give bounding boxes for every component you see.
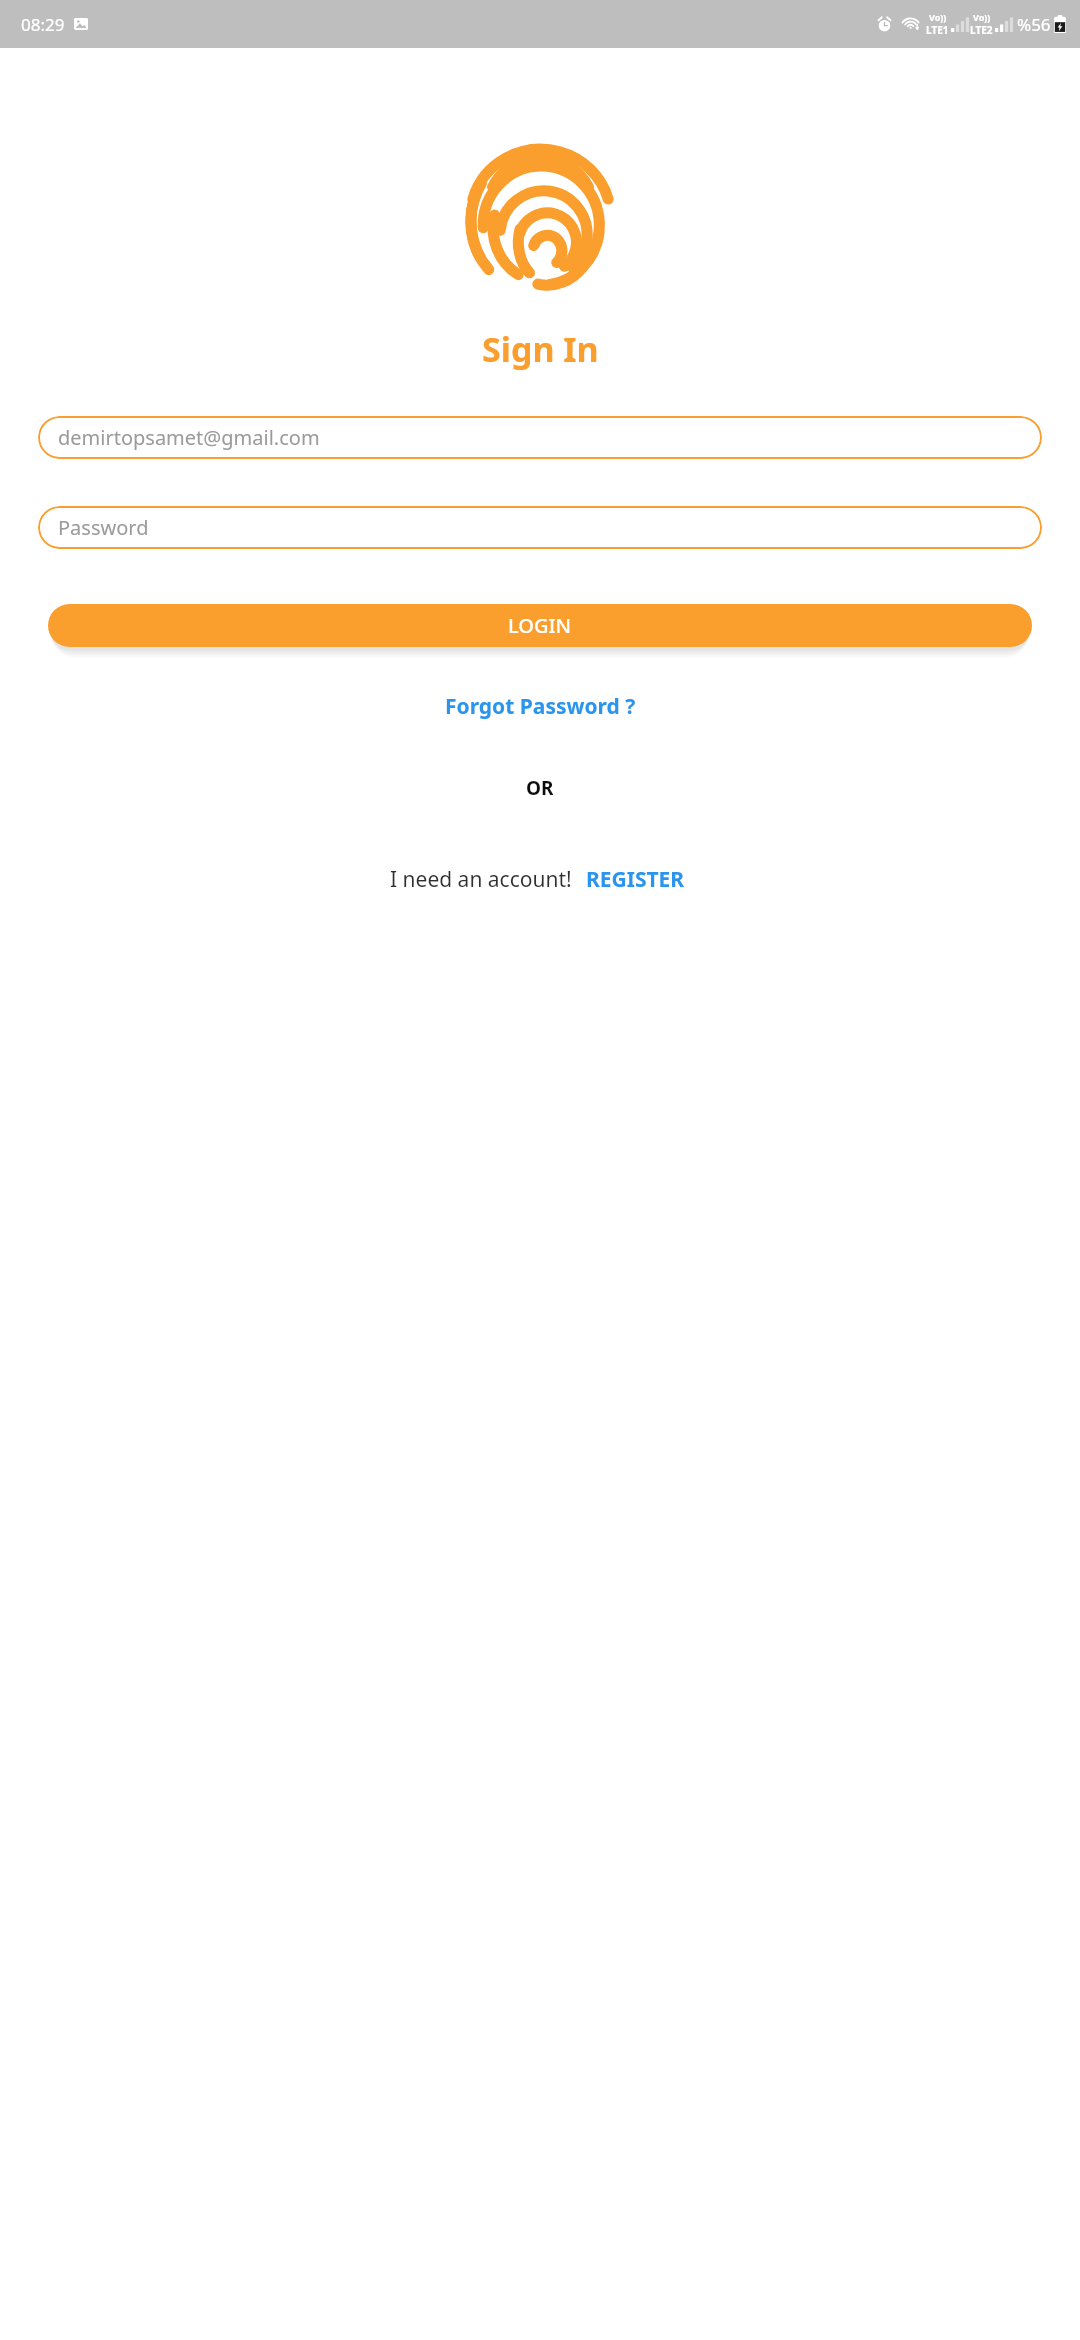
other: Fingerprint logo [464,134,617,302]
button[interactable]: demirtopsamet@gmail.com [38,416,1042,459]
staticText: Vo)) [973,11,991,23]
staticText: OR [526,775,554,801]
staticText: %56 [1017,13,1051,36]
staticText: LTE2 [970,23,993,37]
staticText: 08:29 [21,13,65,36]
staticText: Password [58,514,149,541]
staticText: REGISTER [586,865,685,894]
button[interactable]: REGISTER [580,857,691,902]
staticText: I need an account! [390,865,572,894]
staticText: Forgot Password ? [445,692,636,721]
staticText: LTE1 [926,23,949,37]
button[interactable]: Password [38,506,1042,549]
button[interactable]: Forgot Password ? [433,684,648,729]
staticText: Vo)) [929,11,947,23]
staticText: LOGIN [508,612,572,639]
button[interactable]: LOGIN [48,604,1032,647]
staticText: demirtopsamet@gmail.com [58,424,320,451]
staticText: Sign In [482,326,599,372]
